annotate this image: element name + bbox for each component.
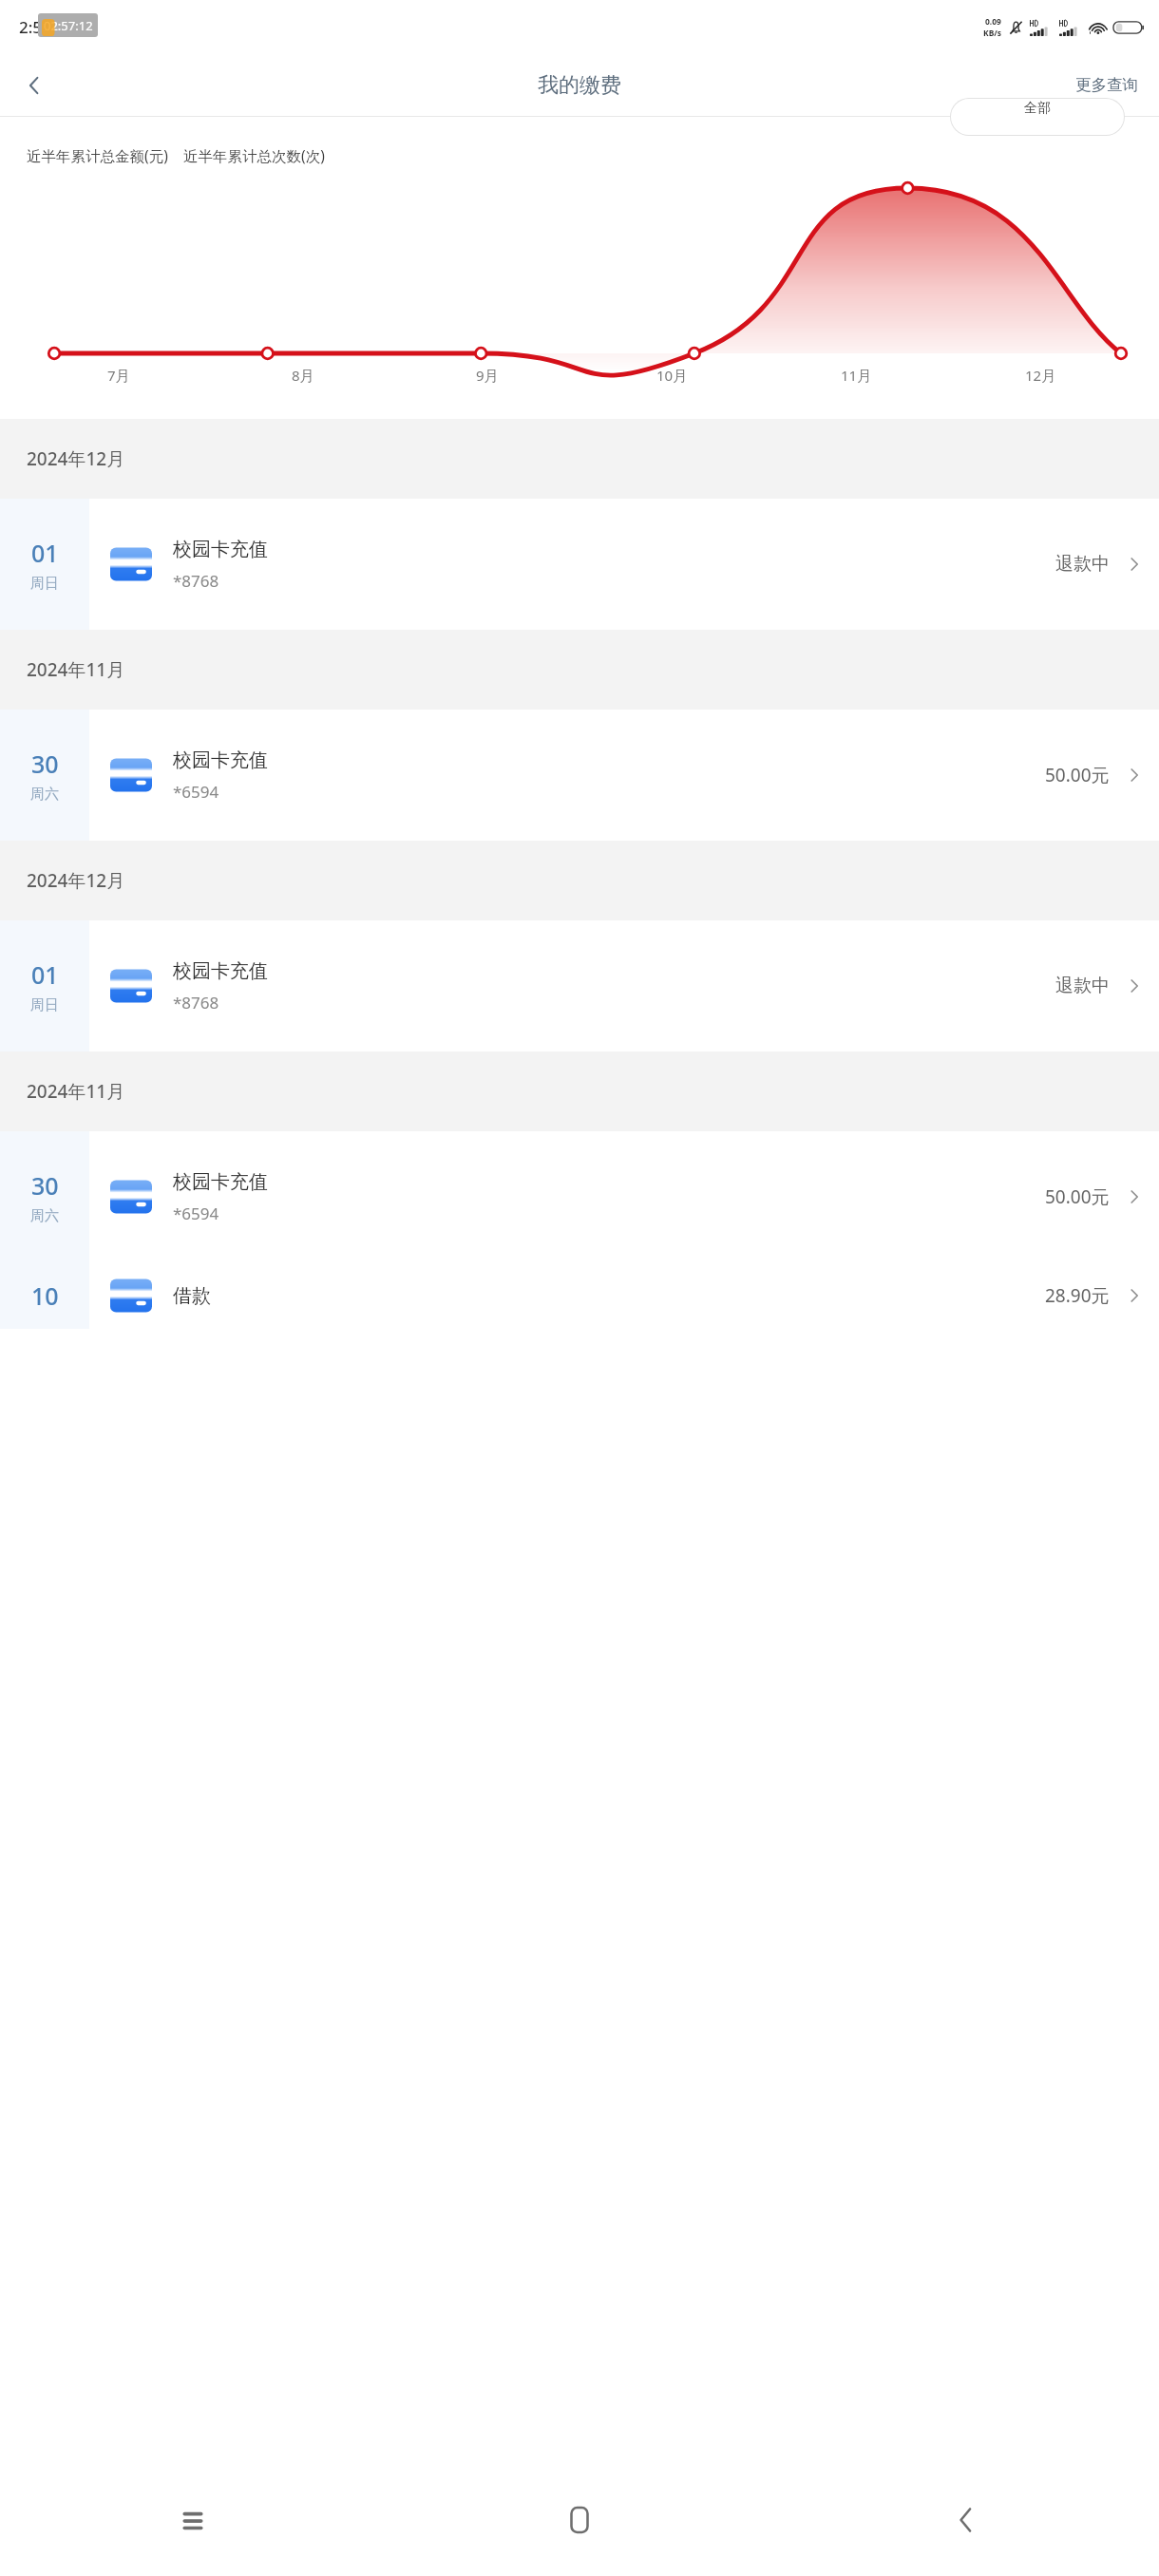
staticText: 近半年累计总金额(元) [27, 145, 168, 165]
staticText: 8月 [292, 366, 314, 385]
button[interactable]: 10 [0, 1262, 1159, 1329]
staticText: 退款中 [1055, 553, 1110, 576]
staticText: 周日 [30, 996, 59, 1014]
button[interactable]: 01 [0, 920, 1159, 1051]
staticText: 周六 [30, 1207, 59, 1225]
staticText: 校园卡充值 [173, 538, 268, 561]
staticText: 2024年12月 [27, 868, 125, 893]
staticText: 我的缴费 [538, 72, 621, 99]
staticText: 01 [31, 537, 59, 569]
button[interactable]: 全部 [950, 98, 1125, 136]
button[interactable]: 30 [0, 1131, 1159, 1262]
button[interactable]: 更多查询 [1072, 67, 1142, 103]
staticText: 0.09 [985, 16, 1001, 28]
button[interactable]: Back [8, 59, 61, 112]
staticText: KB/s [983, 28, 1002, 39]
staticText: 10月 [656, 366, 688, 385]
staticText: 11月 [841, 366, 872, 385]
staticText: 校园卡充值 [173, 959, 268, 983]
staticText: 9月 [476, 366, 499, 385]
staticText: 30 [31, 748, 59, 780]
button[interactable]: 01 [0, 499, 1159, 630]
staticText: 更多查询 [1075, 75, 1138, 95]
staticText: *6594 [173, 1203, 219, 1224]
staticText: 借款 [173, 1284, 211, 1308]
button[interactable]: Recent apps [0, 2464, 386, 2576]
button[interactable]: Home [386, 2464, 772, 2576]
staticText: 校园卡充值 [173, 748, 268, 772]
staticText: 50.00元 [1045, 1184, 1110, 1209]
staticText: 12月 [1025, 366, 1056, 385]
staticText: 2024年11月 [27, 657, 125, 682]
staticText: 01 [31, 958, 59, 991]
staticText: 30 [31, 1169, 59, 1202]
staticText: *6594 [173, 781, 219, 803]
button[interactable]: 30 [0, 710, 1159, 841]
button[interactable]: Back [772, 2464, 1159, 2576]
staticText: 28.90元 [1045, 1283, 1110, 1308]
staticText: 2:57 [19, 16, 51, 38]
staticText: 7月 [107, 366, 130, 385]
staticText: 10 [31, 1279, 59, 1312]
staticText: 周日 [30, 575, 59, 593]
staticText: 近半年累计总次数(次) [183, 145, 325, 165]
staticText: 周六 [30, 786, 59, 804]
staticText: 退款中 [1055, 975, 1110, 997]
staticText: 50.00元 [1045, 763, 1110, 787]
staticText: 2024年12月 [27, 446, 125, 471]
staticText: *8768 [173, 992, 219, 1013]
staticText: *8768 [173, 570, 219, 592]
staticText: 全部 [1024, 100, 1051, 117]
staticText: 校园卡充值 [173, 1170, 268, 1194]
staticText: 2024年11月 [27, 1079, 125, 1104]
staticText: 02:57:12 [44, 17, 93, 34]
